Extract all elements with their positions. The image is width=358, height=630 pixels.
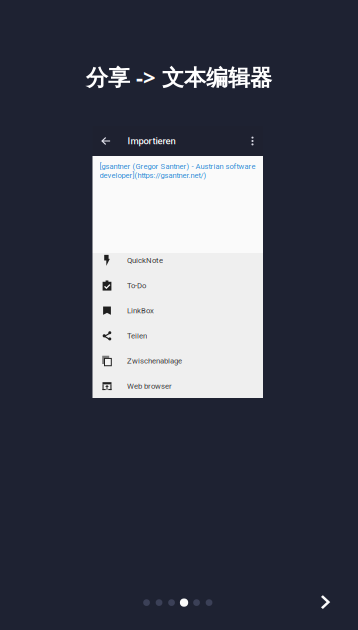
button[interactable]: Zwischenablage xyxy=(92,348,263,373)
staticText: LinkBox xyxy=(127,306,154,315)
button[interactable]: Next page xyxy=(309,585,343,619)
staticText: Teilen xyxy=(127,331,147,340)
button[interactable]: Back xyxy=(98,130,112,152)
button[interactable]: Web browser xyxy=(92,374,263,399)
staticText: Importieren xyxy=(127,135,175,147)
button[interactable]: LinkBox xyxy=(92,298,263,323)
button[interactable]: To-Do xyxy=(92,273,263,298)
button[interactable]: QuickNote xyxy=(92,248,263,273)
staticText: Web browser xyxy=(127,382,172,391)
button[interactable]: Teilen xyxy=(92,323,263,348)
staticText: Zwischenablage xyxy=(127,356,182,365)
button[interactable]: More options xyxy=(244,131,260,151)
staticText: 分享 -> 文本编辑器 xyxy=(86,62,272,92)
staticText: [gsantner (Gregor Santner) - Austrian so… xyxy=(99,162,255,171)
staticText: To-Do xyxy=(127,281,146,290)
staticText: QuickNote xyxy=(127,256,163,265)
staticText: developer](https://gsantner.net/) xyxy=(99,171,206,180)
